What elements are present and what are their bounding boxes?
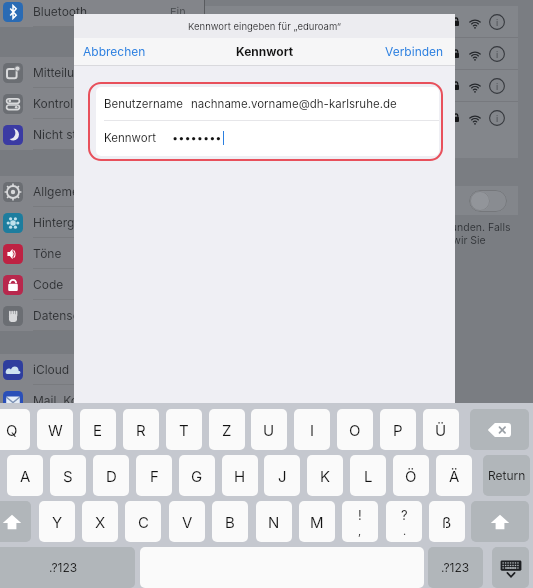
button[interactable]: A <box>7 455 43 496</box>
button[interactable]: Nicht stören <box>0 119 204 150</box>
button[interactable]: Hintergrundbild <box>0 207 204 238</box>
button[interactable]: M <box>299 501 335 542</box>
button[interactable]: S <box>50 455 86 496</box>
staticText: W <box>48 421 63 439</box>
button[interactable]: I <box>294 409 330 450</box>
button[interactable]: .?123 <box>0 547 135 588</box>
staticText: ß <box>442 513 452 531</box>
button[interactable]: Info <box>205 38 518 69</box>
button[interactable]: J <box>264 455 300 496</box>
staticText: ? <box>401 507 408 523</box>
staticText: C <box>138 513 149 531</box>
button[interactable]: Mitteilungen <box>0 57 204 88</box>
button[interactable]: U <box>251 409 287 450</box>
button[interactable]: Info <box>489 14 505 30</box>
button[interactable]: Allgemein <box>0 176 204 207</box>
staticText: Z <box>222 421 232 439</box>
staticText: J <box>278 467 287 485</box>
button[interactable]: Töne <box>0 238 204 269</box>
staticText: i <box>496 81 499 92</box>
button[interactable]: Bluetooth <box>0 0 204 27</box>
button[interactable]: Shift <box>471 501 529 542</box>
staticText: Kennwort <box>236 44 294 59</box>
button[interactable]: Z <box>209 409 245 450</box>
staticText: .?123 <box>49 560 78 575</box>
staticText: L <box>364 467 373 485</box>
staticText: Datenschutz <box>33 308 105 323</box>
button[interactable]: Ä <box>436 455 472 496</box>
button[interactable]: Mail, Kontakte, Kalender <box>0 385 204 416</box>
button[interactable]: Info <box>205 70 518 101</box>
button[interactable]: Ö <box>393 455 429 496</box>
button[interactable]: Info <box>489 78 505 94</box>
staticText: Allgemein <box>33 184 89 199</box>
button[interactable]: G <box>179 455 215 496</box>
staticText: Return <box>488 468 526 483</box>
button[interactable]: F <box>136 455 172 496</box>
button[interactable]: Toggle <box>469 190 507 212</box>
staticText: Ö <box>405 467 417 485</box>
button[interactable]: Info <box>205 102 518 133</box>
button[interactable]: ! <box>342 501 378 542</box>
staticText: Bluetooth <box>33 4 88 19</box>
button[interactable]: P <box>380 409 416 450</box>
staticText: O <box>349 421 361 439</box>
button[interactable]: Q <box>0 409 30 450</box>
staticText: N <box>268 513 280 531</box>
button[interactable]: N <box>256 501 292 542</box>
button[interactable]: X <box>82 501 118 542</box>
staticText: H <box>234 467 246 485</box>
button[interactable]: R <box>123 409 159 450</box>
staticText: R <box>136 421 146 439</box>
button[interactable]: Info <box>205 6 518 37</box>
button[interactable]: Datenschutz <box>0 300 204 331</box>
staticText: iCloud <box>33 362 70 377</box>
staticText: V <box>182 513 193 531</box>
staticText: Nicht stören <box>33 127 102 142</box>
button[interactable]: Kennwort <box>96 121 439 154</box>
button[interactable]: B <box>212 501 248 542</box>
button[interactable]: Abbrechen <box>77 39 152 64</box>
button[interactable]: C <box>125 501 161 542</box>
button[interactable]: H <box>222 455 258 496</box>
staticText: ! <box>358 507 362 523</box>
button[interactable]: Kontrollzentrum <box>0 88 204 119</box>
staticText: D <box>106 467 117 485</box>
button[interactable]: Hide keyboard <box>492 547 529 588</box>
staticText: A <box>20 467 31 485</box>
button[interactable]: Delete <box>470 409 529 450</box>
button[interactable]: ß <box>429 501 465 542</box>
button[interactable]: Info <box>489 110 505 126</box>
button[interactable]: Verbinden <box>379 39 450 64</box>
button[interactable]: Benutzername <box>96 87 439 120</box>
button[interactable]: Y <box>39 501 75 542</box>
staticText: F <box>150 467 159 485</box>
button[interactable]: K <box>307 455 343 496</box>
staticText: Töne <box>33 246 62 261</box>
staticText: i <box>496 17 499 28</box>
button[interactable]: O <box>337 409 373 450</box>
button[interactable]: E <box>80 409 116 450</box>
button[interactable]: Info <box>489 46 505 62</box>
button[interactable]: V <box>169 501 205 542</box>
staticText: T <box>179 421 189 439</box>
staticText: Benutzername <box>104 97 184 111</box>
staticText: E <box>93 421 103 439</box>
staticText: U <box>263 421 275 439</box>
staticText: Abbrechen <box>83 44 146 59</box>
button[interactable]: T <box>166 409 202 450</box>
staticText: Kennwort <box>104 131 156 145</box>
staticText: B <box>225 513 235 531</box>
button[interactable]: Ü <box>423 409 459 450</box>
button[interactable]: D <box>93 455 129 496</box>
button[interactable]: Code <box>0 269 204 300</box>
button[interactable]: ? <box>386 501 422 542</box>
button[interactable]: iCloud <box>0 354 204 385</box>
button[interactable]: .?123 <box>428 547 483 588</box>
button[interactable]: Shift <box>0 501 31 542</box>
staticText: Code <box>33 277 64 292</box>
button[interactable]: L <box>350 455 386 496</box>
button[interactable]: Return <box>483 455 530 496</box>
button[interactable]: W <box>37 409 73 450</box>
